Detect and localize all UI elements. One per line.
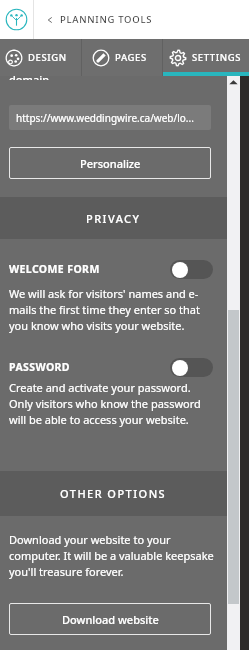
- staticText: Download website: [62, 612, 159, 627]
- button[interactable]: Download website: [9, 603, 211, 635]
- button[interactable]: Home: [0, 0, 33, 39]
- staticText: Download your website to your computer. …: [9, 532, 214, 579]
- button[interactable]: PLANNING TOOLS: [34, 0, 249, 39]
- staticText: We will ask for visitors' names and e-ma…: [9, 286, 214, 333]
- staticText: Personalize: [80, 156, 141, 171]
- button[interactable]: SETTINGS: [163, 39, 249, 76]
- staticText: PLANNING TOOLS: [60, 13, 153, 26]
- staticText: SETTINGS: [192, 51, 242, 64]
- staticText: OTHER OPTIONS: [60, 486, 167, 501]
- staticText: PAGES: [115, 51, 147, 64]
- button[interactable]: PASSWORD: [9, 357, 213, 377]
- staticText: WELCOME FORM: [9, 262, 170, 276]
- staticText: https://www.weddingwire.ca/web/lo...: [16, 111, 194, 125]
- staticText: PASSWORD: [9, 360, 170, 374]
- button[interactable]: WELCOME FORM: [9, 259, 213, 279]
- button[interactable]: PAGES: [82, 39, 162, 76]
- button[interactable]: https://www.weddingwire.ca/web/lo...: [9, 105, 211, 130]
- button[interactable]: DESIGN: [0, 39, 81, 76]
- staticText: DESIGN: [28, 51, 67, 64]
- button[interactable]: Personalize: [9, 147, 211, 179]
- staticText: PRIVACY: [86, 211, 141, 226]
- staticText: Create and activate your password. Only …: [9, 380, 214, 427]
- staticText: domain.: [9, 72, 53, 80]
